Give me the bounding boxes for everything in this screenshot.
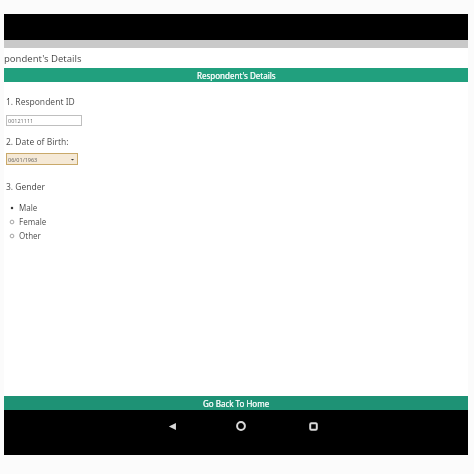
staticText: Male <box>19 202 38 213</box>
staticText: Other <box>19 230 41 241</box>
button[interactable]: Male <box>4 202 468 213</box>
staticText: 06/01/1963 <box>8 156 38 163</box>
button[interactable]: Back <box>156 410 188 442</box>
button[interactable]: Other <box>4 230 468 241</box>
button[interactable]: 00121111 <box>6 115 82 126</box>
button[interactable]: 06/01/1963 <box>6 153 78 165</box>
staticText: 1. Respondent ID <box>6 96 75 108</box>
staticText: 3. Gender <box>6 181 46 193</box>
staticText: Go Back To Home <box>203 398 270 409</box>
staticText: 2. Date of Birth: <box>6 136 69 148</box>
staticText: pondent's Details <box>4 52 82 65</box>
staticText: Respondent's Details <box>197 70 276 81</box>
staticText: 00121111 <box>8 117 34 124</box>
button[interactable]: Female <box>4 216 468 227</box>
button[interactable]: Home <box>225 410 257 442</box>
button[interactable]: Recent apps <box>297 410 329 442</box>
staticText: Female <box>19 216 47 227</box>
button[interactable]: Go Back To Home <box>4 396 468 410</box>
